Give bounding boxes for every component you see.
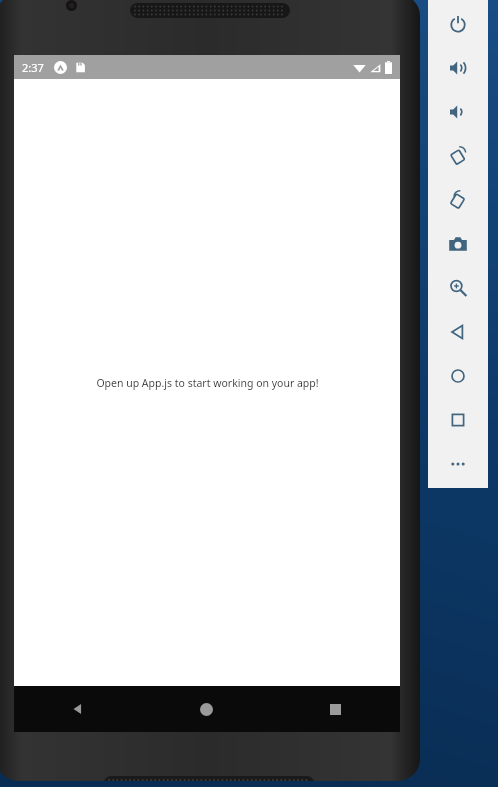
button[interactable]: More xyxy=(428,442,488,486)
button[interactable]: Volume up xyxy=(428,46,488,90)
button[interactable]: Recent apps xyxy=(271,686,400,732)
staticText: Open up App.js to start working on your … xyxy=(96,376,319,390)
button[interactable]: Volume down xyxy=(428,90,488,134)
button[interactable]: Power xyxy=(428,2,488,46)
button[interactable]: Back xyxy=(428,310,488,354)
button[interactable]: Home xyxy=(142,686,271,732)
button[interactable]: Take screenshot xyxy=(428,222,488,266)
staticText: 2:37 xyxy=(22,60,44,75)
button[interactable]: Zoom xyxy=(428,266,488,310)
button[interactable]: Back xyxy=(14,686,142,732)
button[interactable]: Rotate right xyxy=(428,178,488,222)
button[interactable]: Home xyxy=(428,354,488,398)
button[interactable]: Overview xyxy=(428,398,488,442)
button[interactable]: Rotate left xyxy=(428,134,488,178)
